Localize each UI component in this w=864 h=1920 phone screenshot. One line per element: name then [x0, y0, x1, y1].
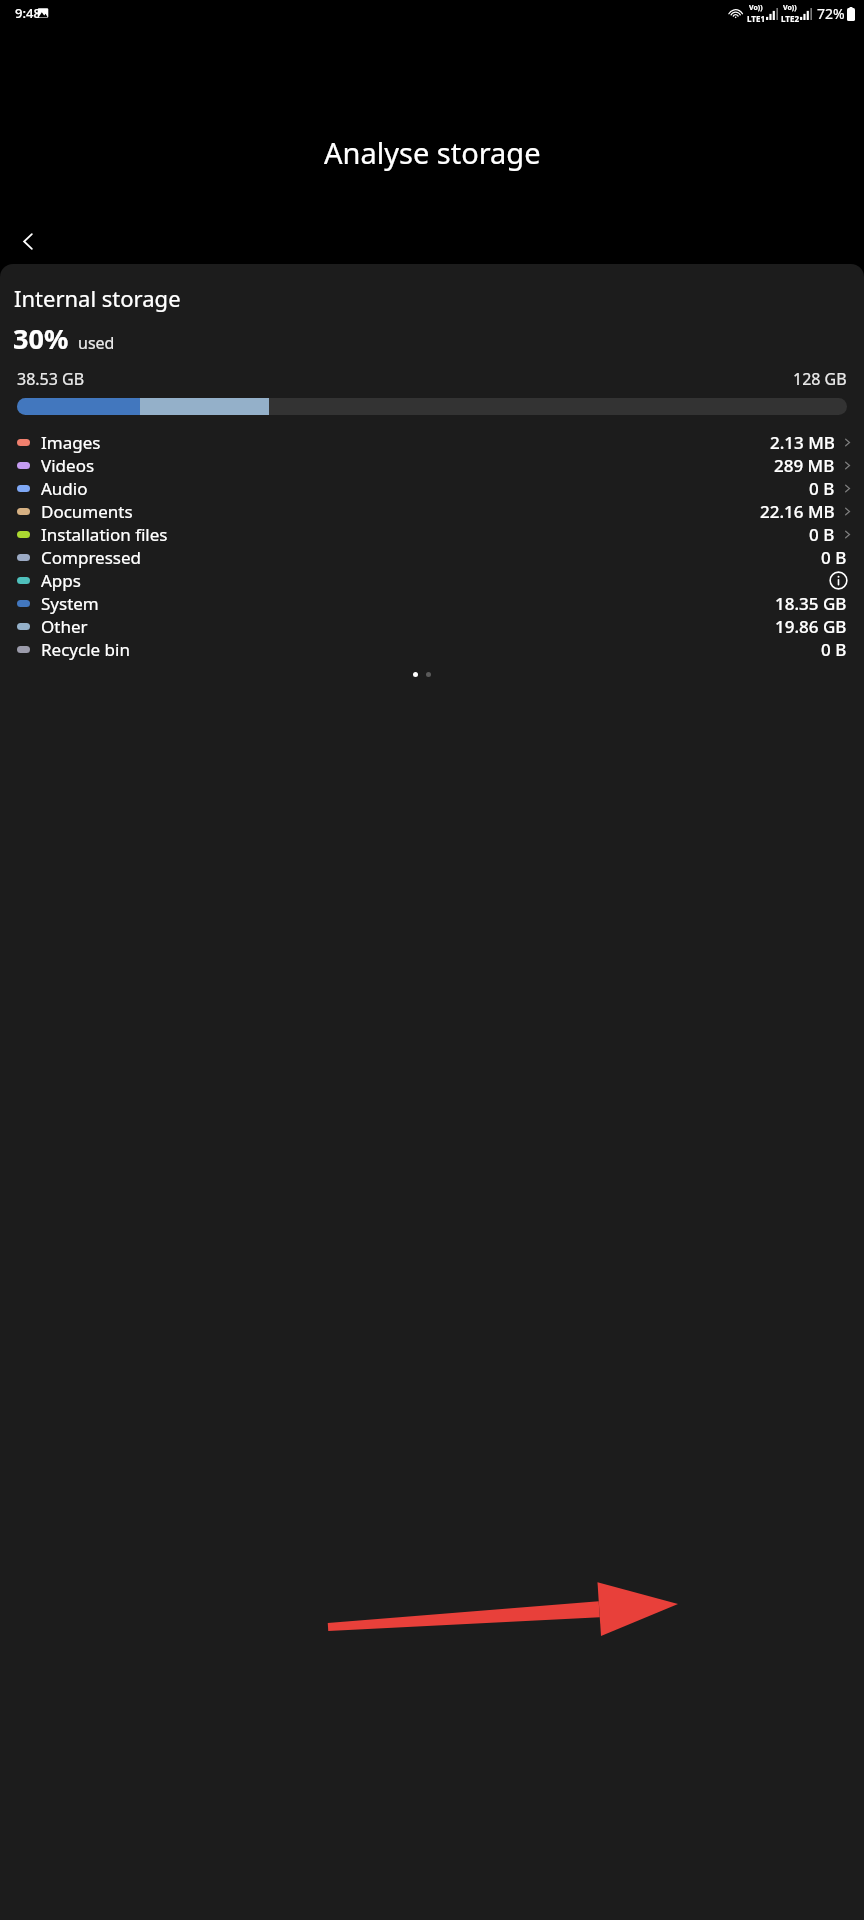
button[interactable] — [426, 672, 431, 677]
button[interactable]: Apps — [0, 569, 864, 592]
staticText: Internal storage — [14, 283, 181, 313]
staticText: used — [78, 332, 115, 354]
staticText: 72% — [817, 4, 845, 23]
staticText: 22.16 MB — [760, 500, 835, 523]
staticText: Installation files — [41, 523, 168, 546]
staticText: 128 GB — [793, 368, 847, 390]
button[interactable]: Other — [0, 615, 864, 638]
staticText: 289 MB — [774, 454, 835, 477]
button[interactable]: System — [0, 592, 864, 615]
button[interactable]: Installation files — [0, 523, 864, 546]
button[interactable]: Documents — [0, 500, 864, 523]
button[interactable]: Audio — [0, 477, 864, 500]
staticText: 18.35 GB — [775, 592, 847, 615]
staticText: Documents — [41, 500, 133, 523]
staticText: 0 B — [809, 523, 835, 546]
staticText: Recycle bin — [41, 638, 130, 661]
staticText: 9:48 — [15, 4, 41, 22]
staticText: 0 B — [809, 477, 835, 500]
staticText: Images — [41, 431, 101, 454]
staticText: Videos — [41, 454, 95, 477]
staticText: Vo)) — [783, 3, 797, 13]
staticText: Audio — [41, 477, 88, 500]
staticText: 0 B — [821, 546, 847, 569]
button[interactable]: Back — [8, 221, 48, 261]
button[interactable] — [413, 672, 418, 677]
button[interactable]: Compressed — [0, 546, 864, 569]
staticText: LTE1 — [747, 13, 765, 24]
staticText: 0 B — [821, 638, 847, 661]
button[interactable]: Recycle bin — [0, 638, 864, 661]
staticText: System — [41, 592, 99, 615]
staticText: Compressed — [41, 546, 141, 569]
staticText: 38.53 GB — [17, 368, 85, 390]
staticText: 2.13 MB — [770, 431, 835, 454]
staticText: Vo)) — [749, 3, 763, 13]
staticText: Apps — [41, 569, 81, 592]
button[interactable]: App info — [825, 569, 851, 592]
staticText: Other — [41, 615, 88, 638]
staticText: 30% — [13, 320, 69, 357]
button[interactable]: Videos — [0, 454, 864, 477]
staticText: 19.86 GB — [775, 615, 847, 638]
staticText: Analyse storage — [324, 133, 541, 172]
button[interactable]: Images — [0, 431, 864, 454]
staticText: LTE2 — [781, 13, 799, 24]
